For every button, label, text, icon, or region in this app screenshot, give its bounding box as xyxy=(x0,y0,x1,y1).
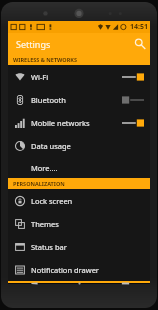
button[interactable]: Recent apps xyxy=(105,283,145,284)
button[interactable]: Data usage xyxy=(8,134,150,157)
button[interactable]: More.... xyxy=(8,157,150,178)
staticText: Settings xyxy=(16,38,51,50)
staticText: Status bar xyxy=(31,242,144,252)
staticText: Themes xyxy=(31,219,144,229)
button[interactable]: Wi-Fi xyxy=(8,65,150,88)
button[interactable]: Notification drawer xyxy=(8,258,150,281)
staticText: 14:51 xyxy=(130,22,148,32)
staticText: Lock screen xyxy=(31,196,144,206)
button[interactable]: Bluetooth xyxy=(8,88,150,111)
staticText: PERSONALIZATION xyxy=(13,180,65,187)
button[interactable]: Home xyxy=(59,283,99,284)
button[interactable]: Back xyxy=(14,283,54,284)
button[interactable]: Mobile networks xyxy=(8,111,150,134)
button[interactable]: Search xyxy=(129,33,150,54)
staticText: Bluetooth xyxy=(31,95,122,105)
staticText: WIRELESS & NETWORKS xyxy=(13,56,77,63)
staticText: Notification drawer xyxy=(31,265,144,275)
staticText: Data usage xyxy=(31,141,144,151)
button[interactable]: Themes xyxy=(8,212,150,235)
staticText: Wi-Fi xyxy=(31,72,122,82)
staticText: Mobile networks xyxy=(31,118,122,128)
staticText: More.... xyxy=(31,163,58,173)
button[interactable]: Lock screen xyxy=(8,189,150,212)
button[interactable]: Status bar xyxy=(8,235,150,258)
